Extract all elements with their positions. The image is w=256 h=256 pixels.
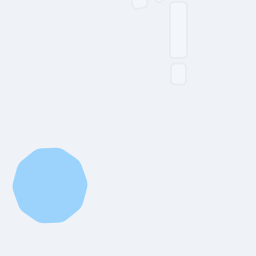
button[interactable]: Open [0, 0, 256, 256]
